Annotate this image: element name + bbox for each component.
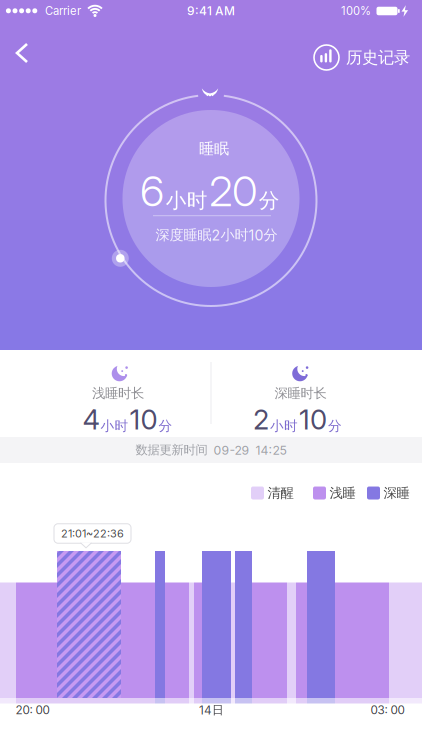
staticText: 深睡时长: [274, 385, 326, 402]
staticText: 数据更新时间 09-29 14:25: [135, 442, 286, 458]
staticText: 小时: [270, 417, 298, 435]
staticText: 分: [259, 188, 280, 213]
staticText: Carrier: [45, 4, 81, 18]
staticText: 20: [209, 165, 257, 216]
staticText: 分: [328, 417, 342, 435]
staticText: 6: [140, 165, 164, 216]
staticText: 小时: [166, 188, 208, 213]
staticText: 10: [129, 403, 157, 436]
staticText: 10: [299, 403, 327, 436]
staticText: 14日: [199, 703, 224, 717]
staticText: 20: 00: [15, 703, 49, 717]
staticText: 分: [158, 417, 172, 435]
staticText: 2: [253, 403, 269, 436]
staticText: 浅睡: [329, 485, 355, 501]
staticText: 深睡: [383, 485, 409, 501]
staticText: 清醒: [267, 485, 293, 501]
staticText: 9:41 AM: [187, 4, 235, 18]
staticText: 浅睡时长: [92, 385, 144, 402]
staticText: 21:01~22:36: [61, 527, 124, 540]
staticText: 历史记录: [346, 47, 410, 68]
staticText: 03: 00: [370, 703, 404, 717]
staticText: 4: [82, 403, 99, 436]
staticText: 100%: [341, 4, 371, 18]
staticText: 睡眠: [199, 139, 229, 158]
staticText: 小时: [100, 417, 128, 435]
staticText: 深度睡眠2小时10分: [155, 226, 277, 244]
